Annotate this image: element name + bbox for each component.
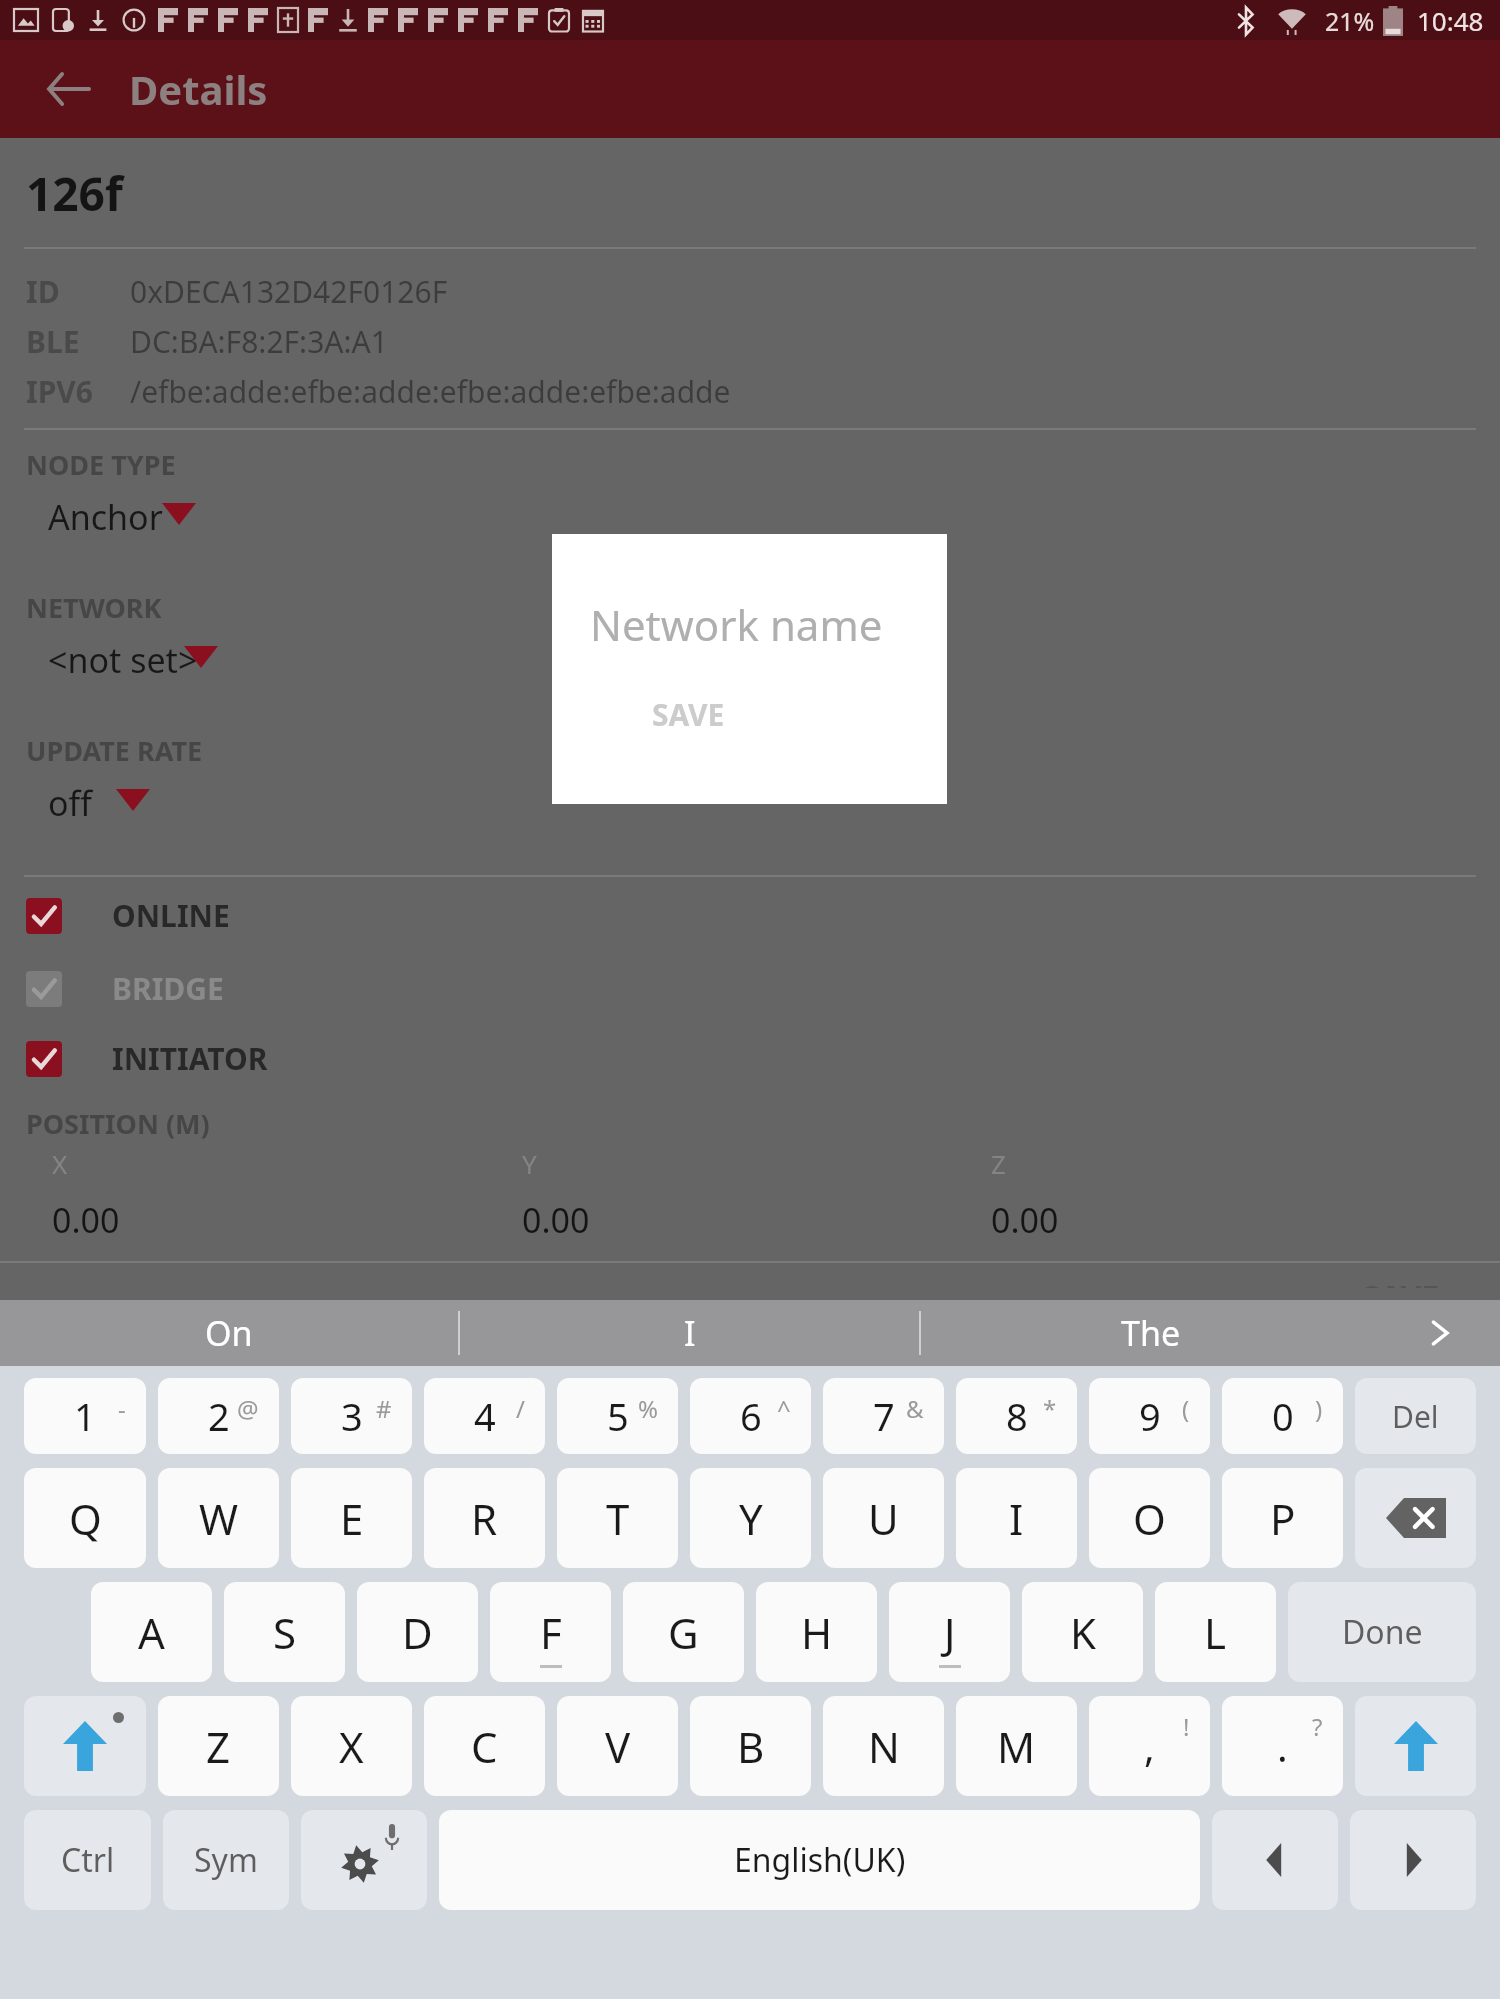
- button[interactable]: U: [823, 1468, 944, 1568]
- button[interactable]: S: [224, 1582, 345, 1682]
- button[interactable]: <not set>: [0, 634, 1500, 686]
- staticText: 7: [873, 1390, 895, 1442]
- button[interactable]: Keyboard settings: [301, 1810, 427, 1910]
- staticText: Del: [1392, 1396, 1439, 1437]
- button[interactable]: B: [690, 1696, 811, 1796]
- button[interactable]: K: [1022, 1582, 1143, 1682]
- staticText: BLE: [26, 321, 80, 362]
- button[interactable]: Anchor: [0, 491, 1500, 543]
- button[interactable]: I: [460, 1300, 919, 1366]
- button[interactable]: D: [357, 1582, 478, 1682]
- button[interactable]: 3: [291, 1378, 412, 1454]
- staticText: 10:48: [1417, 3, 1484, 38]
- button[interactable]: P: [1222, 1468, 1343, 1568]
- button[interactable]: 4: [424, 1378, 545, 1454]
- staticText: L: [1204, 1604, 1227, 1661]
- button[interactable]: BRIDGE: [0, 968, 1500, 1009]
- staticText: Z: [206, 1718, 231, 1775]
- staticText: /: [516, 1392, 525, 1425]
- staticText: W: [199, 1490, 239, 1547]
- button[interactable]: 8: [956, 1378, 1077, 1454]
- button[interactable]: L: [1155, 1582, 1276, 1682]
- staticText: C: [471, 1718, 498, 1775]
- button[interactable]: off: [0, 777, 1500, 829]
- staticText: off: [48, 780, 92, 826]
- button[interactable]: INITIATOR: [0, 1038, 1500, 1079]
- button[interactable]: Shift: [1355, 1696, 1476, 1796]
- button[interactable]: O: [1089, 1468, 1210, 1568]
- button[interactable]: ONLINE: [0, 895, 1500, 936]
- staticText: V: [605, 1718, 631, 1775]
- staticText: N: [868, 1718, 900, 1775]
- button[interactable]: R: [424, 1468, 545, 1568]
- button[interactable]: Move cursor left: [1212, 1810, 1338, 1910]
- button[interactable]: A: [91, 1582, 212, 1682]
- staticText: Network name: [590, 596, 883, 653]
- button[interactable]: Shift: [24, 1696, 146, 1796]
- staticText: T: [606, 1490, 630, 1547]
- button[interactable]: Back: [30, 51, 106, 127]
- button[interactable]: English(UK): [439, 1810, 1200, 1910]
- staticText: D: [402, 1604, 433, 1661]
- button[interactable]: M: [956, 1696, 1077, 1796]
- staticText: E: [340, 1490, 364, 1547]
- staticText: !: [1183, 1710, 1190, 1743]
- button[interactable]: Move cursor right: [1350, 1810, 1476, 1910]
- staticText: ONLINE: [112, 895, 230, 936]
- button[interactable]: Del: [1355, 1378, 1476, 1454]
- button[interactable]: Sym: [163, 1810, 289, 1910]
- staticText: ^: [777, 1392, 791, 1425]
- button[interactable]: V: [557, 1696, 678, 1796]
- button[interactable]: I: [956, 1468, 1077, 1568]
- staticText: Done: [1342, 1610, 1423, 1654]
- staticText: 5: [607, 1390, 629, 1442]
- button[interactable]: SAVE: [636, 684, 741, 745]
- button[interactable]: More suggestions: [1380, 1300, 1500, 1366]
- button[interactable]: G: [623, 1582, 744, 1682]
- staticText: S: [273, 1604, 297, 1661]
- staticText: (: [1182, 1392, 1190, 1425]
- button[interactable]: Ctrl: [24, 1810, 151, 1910]
- button[interactable]: 9: [1089, 1378, 1210, 1454]
- staticText: 1: [74, 1390, 96, 1442]
- button[interactable]: H: [756, 1582, 877, 1682]
- staticText: P: [1270, 1490, 1296, 1547]
- button[interactable]: N: [823, 1696, 944, 1796]
- button[interactable]: Z: [158, 1696, 279, 1796]
- staticText: 0.00: [991, 1197, 1059, 1243]
- staticText: Z: [991, 1146, 1006, 1181]
- button[interactable]: F: [490, 1582, 611, 1682]
- button[interactable]: C: [424, 1696, 545, 1796]
- staticText: I: [1009, 1490, 1024, 1547]
- button[interactable]: 5: [557, 1378, 678, 1454]
- button[interactable]: Done: [1288, 1582, 1476, 1682]
- button[interactable]: Backspace: [1355, 1468, 1476, 1568]
- staticText: /efbe:adde:efbe:adde:efbe:adde:efbe:adde: [130, 371, 731, 412]
- button[interactable]: E: [291, 1468, 412, 1568]
- button[interactable]: The: [921, 1300, 1380, 1366]
- staticText: Sym: [194, 1838, 258, 1882]
- staticText: J: [944, 1604, 956, 1661]
- staticText: 4: [474, 1390, 496, 1442]
- button[interactable]: W: [158, 1468, 279, 1568]
- button[interactable]: Q: [24, 1468, 146, 1568]
- button[interactable]: ,: [1089, 1696, 1210, 1796]
- button[interactable]: T: [557, 1468, 678, 1568]
- staticText: SAVE: [1362, 1275, 1440, 1288]
- button[interactable]: .: [1222, 1696, 1343, 1796]
- button[interactable]: 6: [690, 1378, 811, 1454]
- button[interactable]: On: [0, 1300, 458, 1366]
- staticText: <not set>: [48, 637, 198, 683]
- button[interactable]: 2: [158, 1378, 279, 1454]
- button[interactable]: X: [291, 1696, 412, 1796]
- staticText: 3: [341, 1390, 363, 1442]
- button[interactable]: 0: [1222, 1378, 1343, 1454]
- staticText: IPV6: [26, 371, 93, 412]
- button[interactable]: J: [889, 1582, 1010, 1682]
- staticText: @: [237, 1392, 259, 1425]
- button[interactable]: 7: [823, 1378, 944, 1454]
- button[interactable]: 1: [24, 1378, 146, 1454]
- staticText: ): [1315, 1392, 1323, 1425]
- button[interactable]: Y: [690, 1468, 811, 1568]
